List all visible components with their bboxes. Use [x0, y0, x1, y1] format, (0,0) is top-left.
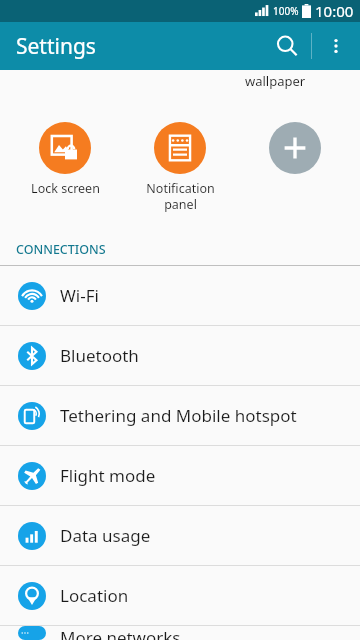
button[interactable]: Add shortcut [245, 122, 345, 174]
button[interactable]: Data usage [0, 506, 360, 565]
staticText: Lock screen [31, 180, 100, 197]
staticText: Notification panel [146, 180, 215, 212]
staticText: Settings [16, 32, 96, 61]
button[interactable]: Location [0, 566, 360, 625]
button[interactable]: Tethering and Mobile hotspot [0, 386, 360, 445]
staticText: wallpaper [245, 72, 306, 90]
staticText: Flight mode [60, 464, 156, 487]
staticText: More networks [60, 626, 181, 640]
staticText: 10:00 [315, 1, 354, 21]
button[interactable]: Bluetooth [0, 326, 360, 385]
staticText: Tethering and Mobile hotspot [60, 404, 297, 427]
button[interactable]: Flight mode [0, 446, 360, 505]
button[interactable]: More options [312, 22, 360, 70]
staticText: Data usage [60, 524, 151, 547]
staticText: Wi-Fi [60, 284, 99, 307]
button[interactable]: Search [263, 22, 311, 70]
button[interactable]: Lock screen [15, 122, 115, 197]
staticText: Location [60, 584, 129, 607]
button[interactable]: More networks [0, 626, 360, 640]
button[interactable]: Wi-Fi [0, 266, 360, 325]
staticText: CONNECTIONS [16, 241, 106, 258]
button[interactable]: Notification panel [130, 122, 230, 212]
staticText: 100% [273, 4, 299, 18]
staticText: Bluetooth [60, 344, 139, 367]
